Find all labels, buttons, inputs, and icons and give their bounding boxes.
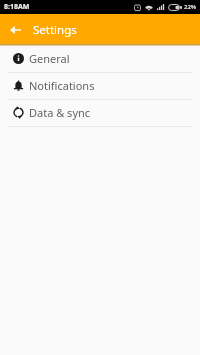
button[interactable]: Back <box>4 17 28 41</box>
button[interactable]: General <box>0 46 200 73</box>
staticText: Settings <box>33 22 77 38</box>
staticText: Notifications <box>29 78 95 93</box>
staticText: 8:18AM <box>4 2 30 12</box>
button[interactable]: Data & sync <box>0 100 200 127</box>
staticText: 22% <box>184 3 197 11</box>
button[interactable]: Notifications <box>0 73 200 100</box>
staticText: Data & sync <box>29 105 91 120</box>
staticText: General <box>29 51 70 66</box>
